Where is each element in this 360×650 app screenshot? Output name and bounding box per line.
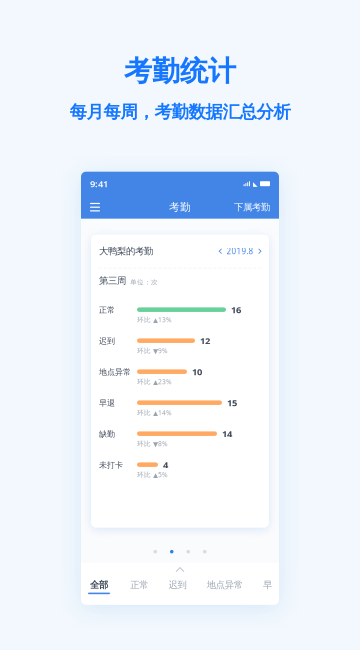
button[interactable]: 2019.8 [219,242,261,260]
staticText: 第三周 [99,275,126,286]
staticText: 正常 [99,305,115,315]
staticText: 迟到 [99,336,115,346]
button[interactable]: 正常 [130,578,148,596]
staticText: 缺勤 [99,429,115,439]
staticText: 16 [231,303,241,316]
staticText: 4 [163,458,168,471]
staticText: 环比 ▲13% [137,315,172,324]
staticText: 考勤 [169,201,191,214]
button[interactable]: 地点异常 [207,578,243,596]
staticText: 14 [222,427,232,440]
staticText: 环比 ▲5% [137,470,168,479]
staticText: 迟到 [168,579,186,591]
button[interactable]: 迟到 [168,578,186,596]
staticText: 早 [263,579,272,591]
button[interactable]: 菜单 [90,196,124,218]
staticText: 每月每周，考勤数据汇总分析 [69,101,290,123]
staticText: 地点异常 [99,367,131,377]
button[interactable]: 早 [263,578,272,596]
staticText: 单位：次 [130,278,158,286]
staticText: 正常 [130,579,148,591]
button[interactable]: 全部 [88,578,110,596]
staticText: 未打卡 [99,460,123,470]
staticText: 15 [227,396,237,409]
staticText: 考勤统计 [124,54,236,88]
staticText: 地点异常 [207,579,243,591]
staticText: 9:41 [90,177,108,190]
staticText: 环比 ▼8% [137,439,168,448]
staticText: 10 [192,365,202,378]
staticText: 2019.8 [227,246,254,256]
staticText: 环比 ▲23% [137,377,172,386]
button[interactable]: 下属考勤 [236,196,270,218]
staticText: 下属考勤 [234,201,270,213]
staticText: 早退 [99,398,115,408]
staticText: 全部 [90,579,108,591]
staticText: 环比 ▲14% [137,408,172,417]
staticText: 环比 ▼9% [137,346,168,355]
staticText: ◣ [252,180,257,187]
staticText: 12 [200,334,210,347]
staticText: 大鸭梨的考勤 [99,245,153,257]
